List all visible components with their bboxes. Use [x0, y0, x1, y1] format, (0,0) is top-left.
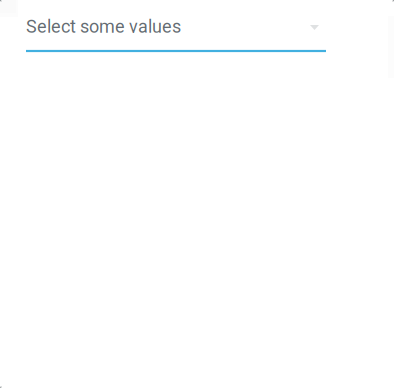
staticText: Select some values [26, 16, 181, 37]
button[interactable]: Select some values [0, 0, 394, 66]
